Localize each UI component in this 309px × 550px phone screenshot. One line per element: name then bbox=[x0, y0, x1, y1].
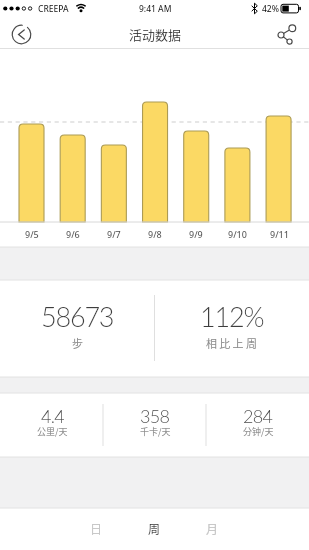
staticText: 9/7 bbox=[107, 228, 121, 240]
staticText: 相比上周 bbox=[206, 335, 260, 351]
staticText: 9/10 bbox=[228, 228, 247, 240]
staticText: 月 bbox=[206, 520, 219, 537]
staticText: 58673 bbox=[41, 300, 114, 330]
staticText: 周 bbox=[148, 520, 161, 537]
staticText: 活动数据 bbox=[129, 25, 182, 44]
staticText: 日 bbox=[90, 520, 103, 537]
button[interactable] bbox=[272, 20, 303, 49]
staticText: CREEPA bbox=[38, 3, 69, 15]
staticText: 42% bbox=[262, 3, 279, 15]
staticText: 9/11 bbox=[270, 228, 289, 240]
button[interactable]: 日 bbox=[67, 507, 125, 549]
staticText: 分钟/天 bbox=[243, 425, 274, 438]
staticText: 9/8 bbox=[148, 228, 162, 240]
staticText: 9/9 bbox=[189, 228, 203, 240]
staticText: 千卡/天 bbox=[140, 425, 171, 438]
staticText: 4.4 bbox=[41, 405, 64, 425]
button[interactable]: 月 bbox=[183, 507, 241, 549]
staticText: 284 bbox=[243, 405, 273, 425]
staticText: 9:41 AM bbox=[139, 3, 172, 15]
button[interactable] bbox=[6, 20, 37, 49]
staticText: 9/5 bbox=[25, 228, 39, 240]
staticText: 步 bbox=[72, 335, 83, 351]
staticText: 358 bbox=[140, 405, 170, 425]
staticText: 112% bbox=[200, 300, 264, 330]
staticText: 公里/天 bbox=[37, 425, 68, 438]
staticText: 9/6 bbox=[66, 228, 80, 240]
button[interactable]: 周 bbox=[125, 507, 183, 549]
